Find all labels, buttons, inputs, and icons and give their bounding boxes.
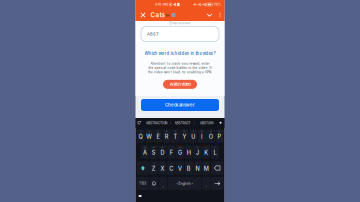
staticText: ; [188,162,189,165]
staticText: Enter answer [169,21,190,25]
staticText: 1 [140,130,141,133]
staticText: Watch video [169,82,190,87]
staticText: ABSTAIN [200,121,213,125]
staticText: + [196,146,198,149]
staticText: 0 [218,130,220,133]
staticText: 8 [201,130,203,133]
staticText: * [153,162,154,165]
button[interactable]: Collapse [203,9,215,21]
staticText: ?123 [139,182,146,185]
staticText: D [160,149,164,156]
staticText: Y [182,133,186,140]
staticText: _ [171,146,172,149]
staticText: R [165,133,169,140]
staticText: ‹ English › [176,181,192,186]
staticText: the video won't load, try enabling a VPN… [148,70,212,74]
staticText: B [187,165,191,172]
staticText: K [204,149,208,156]
staticText: T [174,133,178,140]
button[interactable]: More options [215,9,224,21]
staticText: ABSTRACT [174,121,190,125]
staticText: M [204,165,209,172]
staticText: E [157,133,160,140]
staticText: F [170,149,173,156]
staticText: & [179,146,181,149]
staticText: J [196,149,199,156]
staticText: - [188,146,189,149]
staticText: 4 [166,130,168,133]
button[interactable]: Check answer [141,99,219,111]
staticText: the special code hidden in the video. If [148,66,211,70]
staticText: 2 [148,130,150,133]
staticText: 9 [210,130,212,133]
staticText: P [217,133,221,140]
staticText: 6 [183,130,185,133]
staticText: S [152,149,156,156]
staticText: ABSTRACTION [146,121,167,125]
staticText: N [196,165,200,172]
staticText: ! [197,162,198,165]
staticText: , [162,183,163,188]
staticText: V [178,165,182,172]
staticText: " [162,162,163,165]
staticText: 9:41 PM [154,2,167,7]
staticText: Z [152,165,156,172]
staticText: H [187,149,191,156]
staticText: Check answer [165,102,195,108]
staticText: @ [144,146,146,149]
staticText: O [209,133,213,140]
staticText: A [143,149,147,156]
staticText: . [206,183,207,188]
staticText: Q [138,133,142,140]
staticText: X [160,165,164,172]
staticText: ? [206,162,207,165]
staticText: Attention! To claim your reward, enter [150,62,209,65]
staticText: C [169,165,173,172]
staticText: 5 [175,130,177,133]
staticText: ABST [147,32,159,36]
staticText: # [153,146,155,149]
staticText: W [146,133,152,140]
staticText: $ [161,146,163,149]
staticText: Which word is hidden in the video? [144,51,215,56]
staticText: U [191,133,195,140]
button[interactable]: Close [135,9,150,21]
staticText: I [201,133,203,140]
staticText: G [178,149,182,156]
button[interactable]: Watch video [163,80,197,89]
staticText: ) [214,146,215,149]
staticText: 3 [157,130,159,133]
staticText: 7 [193,130,194,133]
staticText: L [213,149,216,156]
staticText: ( [206,146,207,149]
staticText: Cats [150,11,164,19]
staticText: 76% [213,2,221,7]
